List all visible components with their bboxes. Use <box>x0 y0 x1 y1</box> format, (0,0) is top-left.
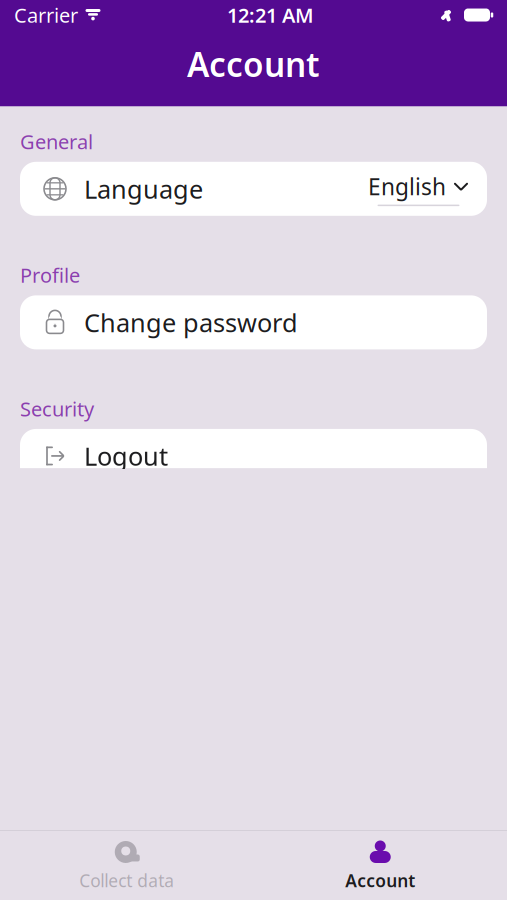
staticText: Profile <box>20 262 80 288</box>
staticText: English <box>368 171 446 202</box>
staticText: Change password <box>84 306 298 339</box>
staticText: 12:21 AM <box>227 2 314 28</box>
staticText: Collect data <box>79 869 174 892</box>
staticText: Security <box>20 395 94 422</box>
staticText: Account <box>187 42 320 86</box>
button[interactable]: Change password <box>20 295 487 349</box>
staticText: Account <box>345 869 415 892</box>
staticText: Carrier <box>14 2 78 28</box>
staticText: General <box>20 128 93 155</box>
staticText: Language <box>84 172 203 206</box>
staticText: Logout <box>84 439 168 473</box>
button[interactable]: English <box>368 171 469 206</box>
button[interactable]: Logout <box>20 429 487 483</box>
button[interactable]: Account <box>253 831 507 900</box>
button[interactable]: Collect data <box>0 831 253 900</box>
button[interactable]: Language <box>20 162 487 216</box>
